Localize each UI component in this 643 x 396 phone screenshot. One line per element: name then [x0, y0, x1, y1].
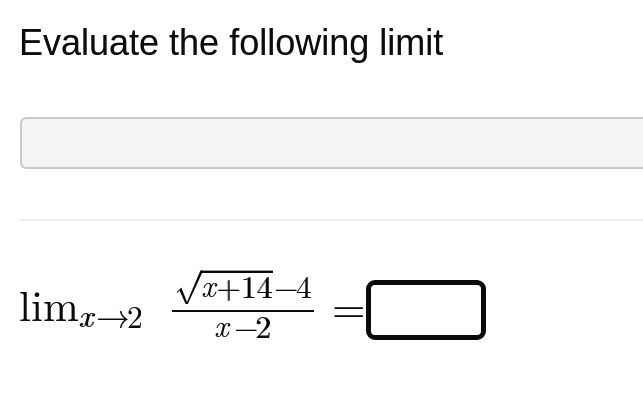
staticText: 4: [296, 262, 312, 307]
staticText: 2: [256, 302, 272, 347]
staticText: −: [274, 262, 299, 307]
staticText: lim: [19, 273, 79, 334]
staticText: =: [332, 275, 366, 336]
staticText: 2: [255, 302, 271, 347]
staticText: 2: [127, 292, 143, 337]
staticText: x: [214, 302, 229, 347]
staticText: +14: [216, 262, 273, 307]
staticText: x: [79, 292, 94, 337]
staticText: −: [274, 262, 299, 307]
staticText: 4: [296, 262, 312, 307]
staticText: x: [214, 302, 229, 347]
staticText: −: [234, 302, 259, 347]
staticText: +14: [217, 262, 274, 307]
staticText: x: [201, 262, 216, 307]
staticText: Evaluate the following limit: [19, 22, 444, 62]
staticText: →: [96, 290, 130, 338]
button[interactable]: Answer entry field: [20, 117, 643, 169]
staticText: x: [201, 262, 216, 307]
staticText: =: [332, 275, 366, 336]
staticText: →: [96, 290, 130, 338]
button[interactable]: Enter your answer: [366, 280, 486, 340]
staticText: 2: [127, 292, 143, 337]
staticText: Evaluate the following limit: [19, 22, 444, 62]
staticText: lim: [19, 273, 79, 334]
staticText: −: [234, 302, 259, 347]
staticText: x: [78, 292, 93, 337]
